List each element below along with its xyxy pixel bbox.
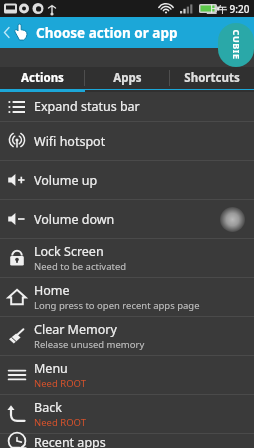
- staticText: Home: [34, 282, 70, 299]
- button[interactable]: Volume up: [0, 161, 254, 199]
- staticText: Actions: [21, 70, 64, 86]
- staticText: Need ROOT: [34, 377, 86, 390]
- button[interactable]: Cubie: [218, 23, 254, 67]
- staticText: CUBIE: [230, 29, 242, 60]
- button[interactable]: Clear Memory: [0, 317, 254, 355]
- staticText: Expand status bar: [34, 98, 140, 115]
- staticText: Wifi hotspot: [34, 133, 106, 150]
- button[interactable]: Apps: [85, 67, 169, 89]
- staticText: Need to be activated: [34, 260, 127, 273]
- staticText: Release unused memory: [34, 338, 145, 351]
- staticText: Need ROOT: [34, 416, 86, 429]
- button[interactable]: Expand status bar: [0, 92, 254, 121]
- button[interactable]: Back: [0, 17, 34, 48]
- button[interactable]: Recent apps: [0, 434, 254, 448]
- staticText: Shortcuts: [184, 70, 240, 86]
- button[interactable]: Menu: [0, 356, 254, 394]
- staticText: Back: [34, 399, 62, 416]
- button[interactable]: Actions: [0, 67, 84, 89]
- staticText: Clear Memory: [34, 321, 117, 338]
- staticText: Long press to open recent apps page: [34, 299, 200, 312]
- staticText: 上午 9:20: [207, 2, 250, 16]
- button[interactable]: Home: [0, 278, 254, 316]
- button[interactable]: Volume down: [0, 200, 254, 238]
- button[interactable]: Toggle volume down: [220, 207, 245, 232]
- staticText: Recent apps: [34, 434, 106, 448]
- staticText: Volume down: [34, 211, 115, 228]
- staticText: Menu: [34, 360, 68, 377]
- button[interactable]: Lock Screen: [0, 239, 254, 277]
- button[interactable]: Back: [0, 395, 254, 433]
- staticText: Choose action or app: [36, 24, 178, 42]
- staticText: Volume up: [34, 172, 98, 189]
- button[interactable]: Shortcuts: [170, 67, 254, 89]
- staticText: Apps: [113, 70, 142, 86]
- button[interactable]: Wifi hotspot: [0, 122, 254, 160]
- staticText: Lock Screen: [34, 243, 104, 260]
